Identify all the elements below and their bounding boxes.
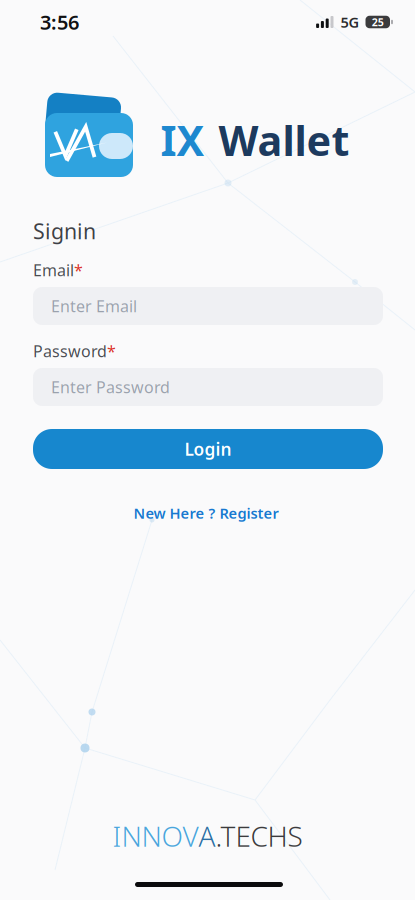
staticText: Wallet xyxy=(218,113,349,167)
staticText: Enter Password xyxy=(51,376,170,398)
staticText: Email xyxy=(33,259,74,281)
staticText: * xyxy=(74,259,83,281)
staticText: 3:56 xyxy=(40,9,79,35)
staticText: INNOV xyxy=(112,817,198,855)
staticText: New Here ? Register xyxy=(133,503,278,523)
staticText: A xyxy=(198,817,215,855)
staticText: Password xyxy=(33,340,107,362)
staticText: Enter Email xyxy=(51,295,137,317)
staticText: .TECHS xyxy=(215,817,302,855)
button[interactable]: Login xyxy=(33,429,383,469)
staticText: * xyxy=(107,340,116,362)
button[interactable]: Enter Email xyxy=(33,287,383,325)
button[interactable]: Enter Password xyxy=(33,368,383,406)
button[interactable]: New Here ? Register xyxy=(133,503,278,523)
staticText: IX xyxy=(160,113,204,167)
staticText: Login xyxy=(184,437,231,460)
staticText: 25 xyxy=(372,15,384,29)
staticText: Signin xyxy=(33,217,96,245)
staticText: 5G xyxy=(340,12,359,32)
